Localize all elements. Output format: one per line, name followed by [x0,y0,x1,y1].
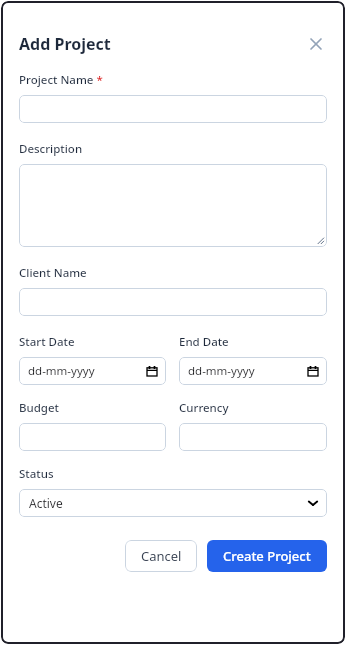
staticText: dd-mm-yyyy [188,363,255,379]
button[interactable]: dd-mm-yyyy [19,357,166,385]
staticText: Status [19,466,54,482]
button[interactable]: Close [305,33,327,55]
button[interactable] [19,288,327,316]
button[interactable] [19,423,166,451]
button[interactable] [19,164,327,247]
button[interactable]: Cancel [125,540,197,572]
staticText: Client Name [19,265,87,281]
staticText: Cancel [141,547,182,565]
button[interactable]: Active [19,489,327,517]
staticText: dd-mm-yyyy [28,363,95,379]
button[interactable] [179,423,327,451]
staticText: Start Date [19,334,75,350]
other: Pick date [147,366,157,376]
button[interactable]: dd-mm-yyyy [179,357,327,385]
staticText: End Date [179,334,229,350]
staticText: Project Name * [19,72,103,88]
staticText: Budget [19,400,59,416]
other: Pick date [308,366,318,376]
staticText: Create Project [223,547,311,565]
staticText: Add Project [19,33,111,55]
staticText: Description [19,141,83,157]
staticText: Active [29,495,63,511]
button[interactable] [19,95,327,123]
staticText: Currency [179,400,229,416]
button[interactable]: Create Project [207,540,327,572]
